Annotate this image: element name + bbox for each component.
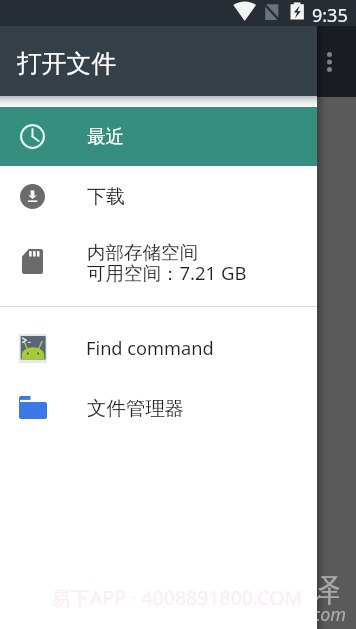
button[interactable]: Find command [0, 319, 317, 378]
button[interactable]: Close navigation drawer [317, 97, 356, 629]
staticText: 9:35 [312, 3, 348, 28]
staticText: 内部存储空间 [87, 241, 198, 264]
button[interactable]: 文件管理器 [0, 378, 317, 437]
staticText: 可用空间：7.21 GB [87, 260, 247, 285]
staticText: 打开文件 [17, 48, 117, 79]
staticText: com [312, 602, 347, 627]
button[interactable]: More options [311, 40, 347, 84]
staticText: 最近 [87, 125, 124, 148]
button[interactable]: 最近 [0, 107, 317, 166]
staticText: Find command [86, 336, 214, 361]
staticText: 下载 [87, 185, 125, 209]
staticText: 文件管理器 [87, 396, 184, 420]
button[interactable]: 内部存储空间 [0, 227, 317, 296]
staticText: 译 [309, 570, 341, 610]
button[interactable]: 下载 [0, 166, 317, 227]
staticText: 易下APP · 4008891800.COM [51, 584, 303, 611]
